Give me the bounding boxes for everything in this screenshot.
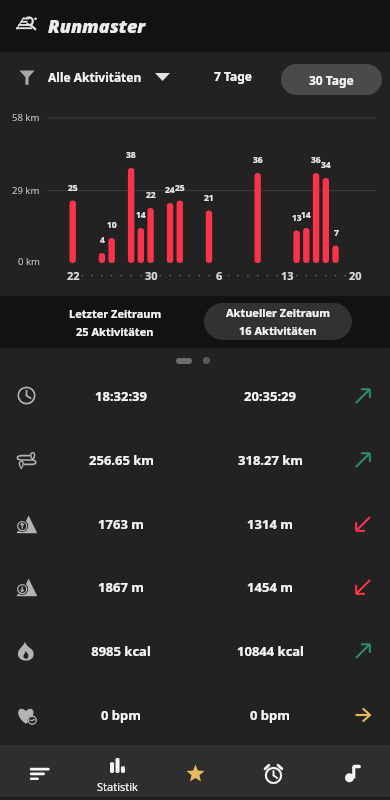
staticText: 36 xyxy=(253,154,263,166)
button[interactable]: 18:32:39 xyxy=(0,364,390,428)
button[interactable]: 1763 m xyxy=(0,492,390,556)
staticText: 58 km xyxy=(12,111,40,124)
button[interactable]: Sortieren xyxy=(9,745,69,797)
staticText: 20 xyxy=(349,268,362,283)
staticText: 10844 kcal xyxy=(237,642,304,660)
button[interactable]: Favoriten xyxy=(165,745,225,797)
staticText: 25 xyxy=(68,182,78,194)
staticText: 4 xyxy=(100,234,105,246)
staticText: 0 km xyxy=(18,255,40,268)
staticText: Alle Aktivitäten xyxy=(48,69,142,85)
button[interactable]: Statistik xyxy=(77,745,157,797)
staticText: Aktueller Zeitraum xyxy=(226,305,330,320)
button[interactable]: Alle Aktivitäten xyxy=(19,53,170,101)
button[interactable]: 7 Tage xyxy=(203,61,263,91)
staticText: 1314 m xyxy=(247,515,293,533)
button[interactable]: 30 Tage xyxy=(281,64,382,95)
staticText: 8985 kcal xyxy=(91,642,151,660)
staticText: 20:35:29 xyxy=(244,387,296,405)
staticText: 0 bpm xyxy=(250,706,290,724)
staticText: 34 xyxy=(321,159,331,171)
staticText: 22 xyxy=(146,189,156,201)
staticText: 10 xyxy=(107,219,117,231)
staticText: 36 xyxy=(311,154,321,166)
staticText: 21 xyxy=(204,192,214,204)
staticText: 29 km xyxy=(12,184,40,197)
staticText: 1867 m xyxy=(98,578,144,596)
button[interactable]: Wecker xyxy=(243,745,303,797)
staticText: 38 xyxy=(126,149,136,161)
staticText: Runmaster xyxy=(48,14,146,39)
staticText: 14 xyxy=(136,209,146,221)
staticText: 18:32:39 xyxy=(95,387,147,405)
staticText: 16 Aktivitäten xyxy=(239,323,317,338)
staticText: 1454 m xyxy=(247,578,293,596)
staticText: 7 Tage xyxy=(214,68,252,84)
staticText: Letzter Zeitraum xyxy=(69,306,162,321)
staticText: 7 xyxy=(334,227,339,239)
staticText: 1763 m xyxy=(98,515,144,533)
button[interactable]: 0 bpm xyxy=(0,683,390,747)
button[interactable]: Aktueller Zeitraum xyxy=(204,303,352,340)
button[interactable]: 1867 m xyxy=(0,555,390,619)
staticText: 25 xyxy=(175,182,185,194)
staticText: 30 Tage xyxy=(309,72,354,88)
staticText: 318.27 km xyxy=(238,451,303,469)
staticText: 14 xyxy=(301,209,311,221)
staticText: 256.65 km xyxy=(89,451,154,469)
staticText: 0 bpm xyxy=(101,706,141,724)
staticText: 13 xyxy=(281,268,294,283)
staticText: Statistik xyxy=(97,779,138,794)
button[interactable]: 256.65 km xyxy=(0,428,390,492)
staticText: 13 xyxy=(292,212,302,224)
staticText: 22 xyxy=(67,268,80,283)
staticText: 30 xyxy=(145,268,158,283)
button[interactable]: Musik xyxy=(322,745,382,797)
button[interactable]: Letzter Zeitraum xyxy=(40,296,190,348)
staticText: 25 Aktivitäten xyxy=(76,324,154,339)
staticText: 24 xyxy=(165,184,175,196)
button[interactable]: 8985 kcal xyxy=(0,619,390,683)
staticText: 6 xyxy=(216,268,223,283)
